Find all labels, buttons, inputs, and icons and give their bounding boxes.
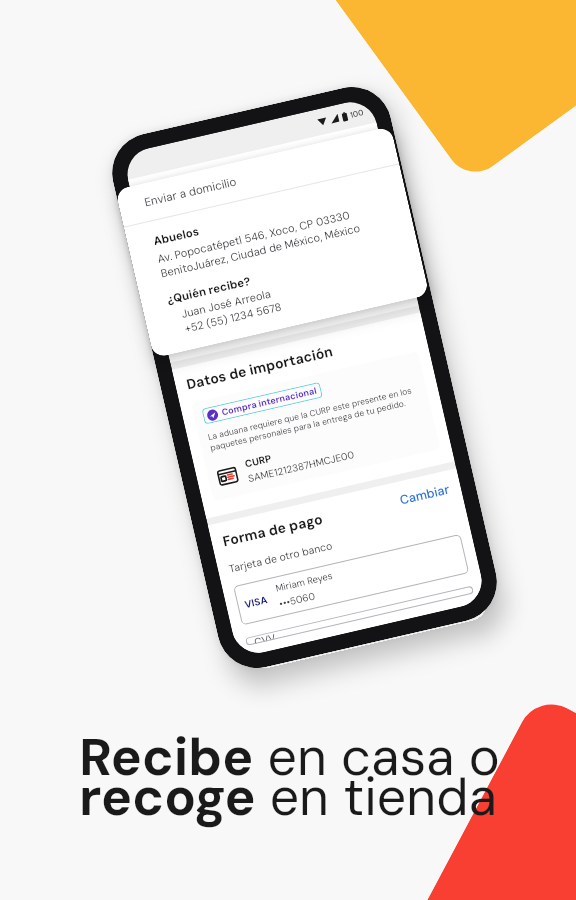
staticText: Forma de pago bbox=[221, 510, 324, 550]
staticText: ¿Quién recibe? bbox=[165, 274, 253, 308]
staticText: Datos de importación bbox=[185, 342, 335, 393]
button[interactable]: Forma de entrega bbox=[128, 122, 385, 217]
staticText: Forma de entrega bbox=[141, 159, 265, 204]
staticText: La aduana requiere que la CURP este pres… bbox=[207, 385, 413, 443]
staticText: Enviar a domicilio bbox=[143, 174, 238, 210]
staticText: CURP bbox=[243, 452, 273, 470]
staticText: BenitoJuárez, Ciudad de México, México bbox=[159, 221, 362, 280]
staticText: Tarjeta de otro banco bbox=[228, 539, 334, 577]
staticText: Recibe en casa o bbox=[79, 723, 500, 791]
staticText: CVV bbox=[253, 631, 276, 644]
staticText: SAME1212387HMCJE00 bbox=[247, 448, 356, 485]
button[interactable]: Cambiar bbox=[398, 481, 452, 508]
staticText: Compra internacional bbox=[220, 385, 319, 418]
staticText: •••5060 bbox=[278, 589, 317, 610]
staticText: +52 (55) 1234 5678 bbox=[183, 300, 283, 335]
staticText: Juan José Arreola bbox=[180, 286, 273, 321]
staticText: paquetes personales para la entrega de t… bbox=[209, 398, 408, 454]
staticText: VISA bbox=[243, 593, 269, 610]
staticText: Miriam Reyes bbox=[274, 570, 334, 595]
staticText: recoge en tienda bbox=[79, 763, 498, 831]
staticText: 100 bbox=[349, 107, 365, 120]
staticText: Abuelos bbox=[152, 224, 201, 249]
staticText: Av. Popocatépetl 546, Xoco, CP 03330 bbox=[156, 208, 351, 266]
